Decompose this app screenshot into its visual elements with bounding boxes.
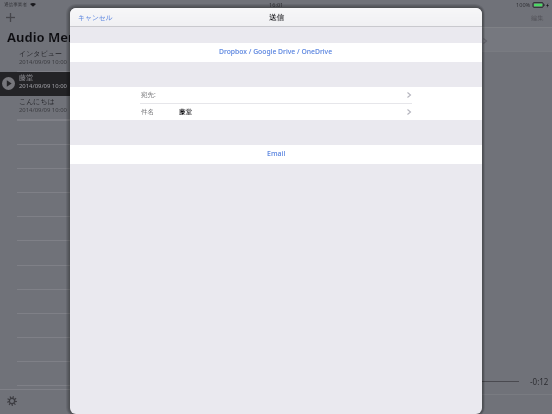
button[interactable]: Email xyxy=(70,145,482,164)
staticText: 送信 xyxy=(269,13,284,22)
button[interactable]: Dropbox / Google Drive / OneDrive xyxy=(70,43,482,62)
staticText: -0:12 xyxy=(530,376,549,387)
staticText: 件名 xyxy=(141,108,154,116)
button[interactable]: 件名 xyxy=(70,103,482,120)
button[interactable]: New recording xyxy=(2,9,19,26)
staticText: 2014/09/09 10:00 xyxy=(19,106,67,114)
button[interactable]: Settings xyxy=(2,391,22,411)
staticText: 編集 xyxy=(531,14,544,22)
staticText: Dropbox / Google Drive / OneDrive xyxy=(219,47,333,56)
button[interactable]: 編集 xyxy=(526,12,548,23)
staticText: 通信事業者 xyxy=(4,2,27,8)
button[interactable]: インタビュー xyxy=(0,48,70,72)
staticText: 藤堂 xyxy=(19,73,33,82)
button[interactable]: 藤堂 xyxy=(0,72,70,96)
staticText: 16:01 xyxy=(269,1,284,9)
staticText: 100% xyxy=(516,1,531,9)
staticText: 藤堂 xyxy=(179,108,192,116)
button[interactable]: キャンセル xyxy=(70,8,140,26)
staticText: 2014/09/09 10:00 xyxy=(19,58,67,66)
button[interactable]: 宛先: xyxy=(70,86,482,103)
staticText: 2014/09/09 10:00 xyxy=(19,82,67,90)
staticText: インタビュー xyxy=(19,49,62,58)
staticText: Audio Mem xyxy=(7,28,70,46)
staticText: キャンセル xyxy=(78,13,113,22)
staticText: 宛先: xyxy=(141,90,156,99)
staticText: こんにちは xyxy=(19,97,55,106)
staticText: Email xyxy=(267,149,286,159)
button[interactable]: こんにちは xyxy=(0,96,70,120)
